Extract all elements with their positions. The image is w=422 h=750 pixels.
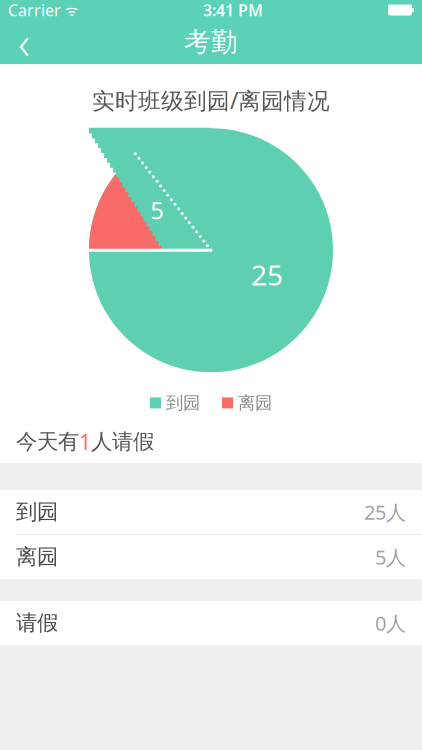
button[interactable]: Back — [0, 20, 48, 64]
staticText: 到园 — [16, 499, 58, 525]
staticText: 5 — [150, 194, 164, 226]
staticText: 人请假 — [91, 429, 154, 455]
staticText: 请假 — [16, 610, 58, 636]
staticText: 5人 — [375, 544, 406, 570]
staticText: 1 — [79, 427, 91, 456]
staticText: 到园 — [166, 392, 200, 413]
button[interactable]: 请假 — [0, 601, 422, 645]
staticText: Carrier — [8, 0, 61, 21]
staticText: 考勤 — [184, 26, 238, 58]
staticText: 实时班级到园/离园情况 — [92, 85, 330, 115]
staticText: 0人 — [375, 610, 406, 636]
staticText: 离园 — [16, 544, 58, 570]
staticText: 离园 — [238, 392, 272, 413]
button[interactable]: 到园 — [0, 490, 422, 534]
staticText: 25人 — [364, 499, 406, 525]
staticText: 3:41 PM — [203, 0, 263, 21]
button[interactable]: 离园 — [0, 535, 422, 579]
staticText: 25 — [251, 256, 283, 293]
staticText: ᯤ — [61, 0, 78, 20]
staticText: 今天有 — [16, 429, 79, 455]
staticText: ‹ — [18, 12, 30, 72]
